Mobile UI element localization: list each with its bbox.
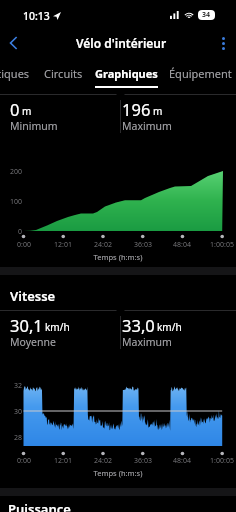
staticText: 28 xyxy=(0,433,22,443)
staticText: 12:01 xyxy=(47,240,79,250)
staticText: Puissance xyxy=(8,500,71,512)
staticText: Équipement xyxy=(169,66,232,81)
staticText: 36:03 xyxy=(127,456,159,466)
staticText: Vélo d'intérieur xyxy=(76,35,167,51)
button[interactable]: Statistiques xyxy=(0,60,31,90)
staticText: Temps (h:m:s) xyxy=(0,468,236,478)
staticText: 30 xyxy=(0,407,22,417)
staticText: Maximum xyxy=(122,119,172,133)
staticText: 33,0 xyxy=(122,314,155,336)
staticText: m xyxy=(22,104,32,118)
staticText: Moyenne xyxy=(10,335,56,349)
staticText: Temps (h:m:s) xyxy=(0,252,236,262)
staticText: 0:00 xyxy=(8,240,40,250)
staticText: 0 xyxy=(0,227,22,237)
staticText: 1:00:05 xyxy=(206,456,236,466)
staticText: 48:04 xyxy=(166,240,198,250)
button[interactable]: Graphiques xyxy=(95,60,158,90)
staticText: Circuits xyxy=(44,66,83,81)
staticText: 48:04 xyxy=(166,456,198,466)
button[interactable]: Équipement xyxy=(167,60,233,90)
staticText: 100 xyxy=(0,197,22,207)
staticText: 10:13 xyxy=(23,9,50,23)
staticText: km/h xyxy=(45,320,70,334)
staticText: 34 xyxy=(202,10,211,20)
staticText: 0:00 xyxy=(8,456,40,466)
staticText: 24:02 xyxy=(87,240,119,250)
staticText: m xyxy=(153,104,163,118)
staticText: Statistiques xyxy=(0,66,30,81)
staticText: 200 xyxy=(0,167,22,177)
staticText: 12:01 xyxy=(47,456,79,466)
staticText: Vitesse xyxy=(10,287,56,305)
staticText: 0 xyxy=(10,98,20,120)
button[interactable]: Back xyxy=(0,28,26,58)
staticText: 32 xyxy=(0,381,22,391)
staticText: Minimum xyxy=(10,119,58,133)
staticText: 30,1 xyxy=(10,314,43,336)
staticText: 1:00:05 xyxy=(206,240,236,250)
button[interactable]: Circuits xyxy=(44,60,83,90)
staticText: Graphiques xyxy=(95,66,158,81)
staticText: Maximum xyxy=(122,335,172,349)
staticText: km/h xyxy=(157,320,182,334)
staticText: 24:02 xyxy=(87,456,119,466)
button[interactable]: More options xyxy=(210,28,236,58)
staticText: 36:03 xyxy=(127,240,159,250)
staticText: 196 xyxy=(122,98,151,120)
